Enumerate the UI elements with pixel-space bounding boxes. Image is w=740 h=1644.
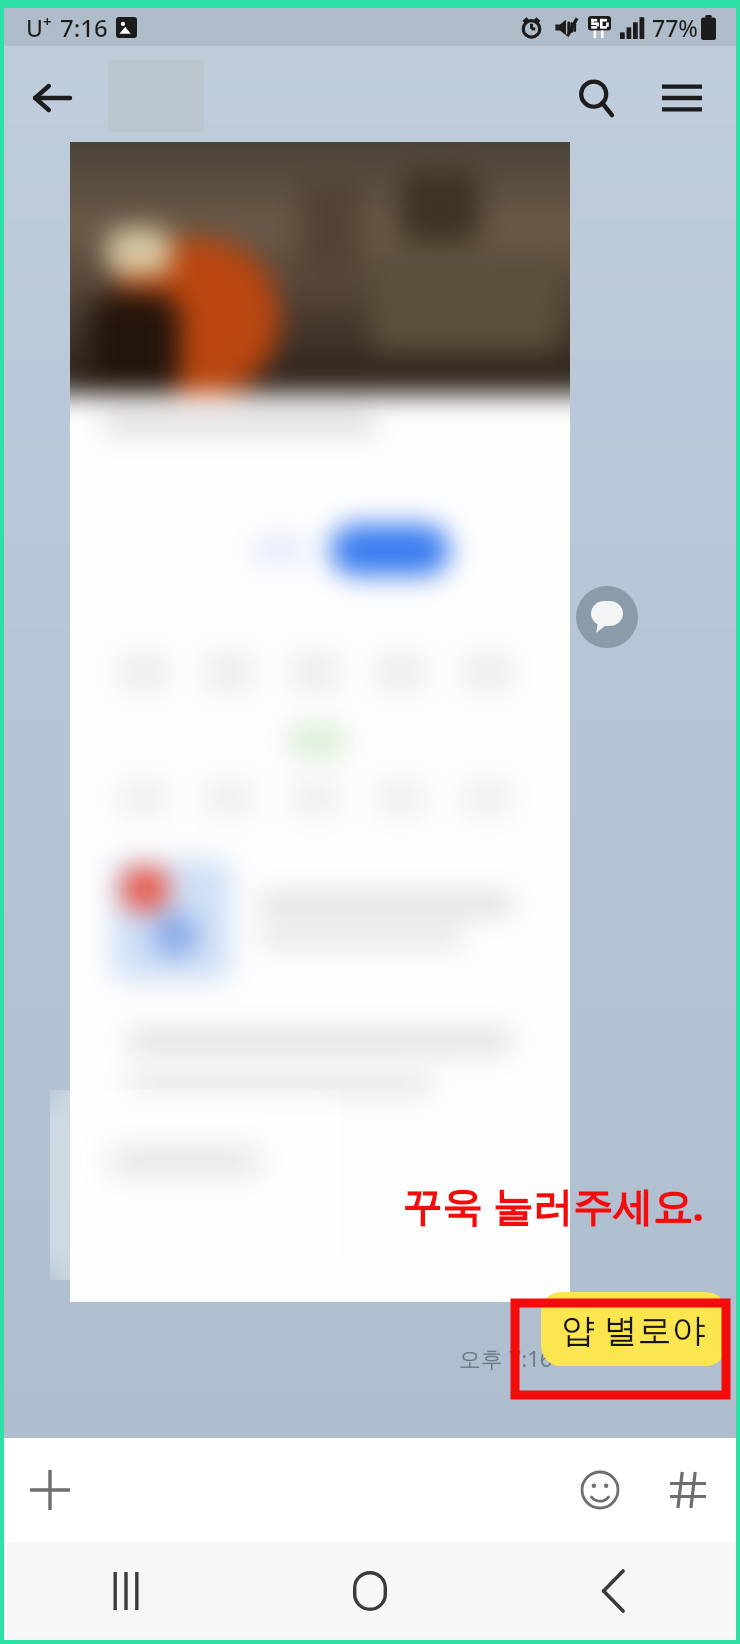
staticText: 오후 7:16 [459,1343,553,1373]
button[interactable]: Home [248,1542,492,1640]
button[interactable]: Shortcuts [656,1458,720,1522]
button[interactable]: Emoticons [568,1458,632,1522]
staticText: 7:16 [60,11,108,44]
staticText: U [26,12,43,43]
button[interactable]: 얍 별로야 [541,1292,726,1366]
button[interactable]: Recent apps [4,1542,248,1640]
staticText: 77% [652,12,698,43]
button[interactable]: Open chat [576,586,638,648]
button[interactable]: Search [564,66,628,130]
button[interactable]: Add attachment [18,1458,82,1522]
button[interactable]: Menu [650,66,714,130]
staticText: 1 [553,1328,566,1358]
staticText: 꾸욱 눌러주세요. [402,1178,704,1233]
button[interactable]: Back [492,1542,736,1640]
button[interactable]: Back [20,66,84,130]
staticText: 얍 별로야 [561,1306,706,1352]
staticText: + [43,11,52,31]
